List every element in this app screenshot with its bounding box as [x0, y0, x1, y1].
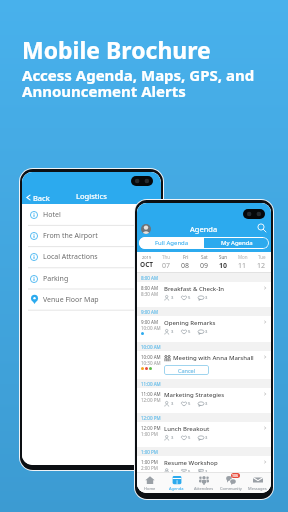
staticText: 9:00 AM — [141, 319, 159, 325]
staticText: 3 — [204, 435, 208, 441]
staticText: 8:00 AM — [141, 275, 159, 281]
button[interactable]: Venue Floor Map — [22, 289, 161, 310]
button[interactable]: Tue — [252, 252, 271, 272]
staticText: From the Airport — [43, 231, 98, 241]
staticText: 08 — [181, 261, 190, 271]
staticText: 12:00 PM — [141, 397, 161, 403]
staticText: Marketing Strategies — [164, 391, 225, 399]
button[interactable]: 9:00 AM — [137, 316, 271, 342]
staticText: 2019 — [142, 255, 152, 260]
staticText: 3 — [204, 295, 208, 301]
staticText: Home — [144, 486, 156, 491]
button[interactable]: Messages — [244, 473, 271, 493]
staticText: Agenda — [190, 224, 218, 234]
button[interactable]: Attendees — [190, 473, 217, 493]
staticText: Mobile Brochure — [22, 34, 211, 65]
staticText: Parking — [43, 274, 69, 284]
staticText: 5 — [187, 435, 191, 441]
button[interactable]: Back — [22, 191, 55, 204]
button[interactable]: Full Agenda — [139, 237, 204, 249]
staticText: 2:00 PM — [141, 465, 158, 471]
button[interactable]: Local Attractions — [22, 246, 161, 267]
staticText: Lunch Breakout — [164, 425, 210, 433]
button[interactable]: Fri — [176, 252, 195, 272]
staticText: 1:00 PM — [141, 459, 158, 465]
button[interactable]: From the Airport — [22, 225, 161, 246]
button[interactable]: 1:00 PM — [137, 456, 271, 472]
staticText: Breakfast & Check-In — [164, 285, 225, 293]
staticText: 10:00 AM — [141, 344, 161, 350]
staticText: 11 — [238, 261, 247, 271]
button[interactable]: Profile — [141, 224, 151, 234]
button[interactable]: Parking — [22, 268, 161, 289]
staticText: 1:00 PM — [141, 431, 158, 437]
staticText: 3 — [170, 295, 174, 301]
button[interactable]: 12:00 PM — [137, 422, 271, 447]
staticText: Full Agenda — [155, 239, 189, 247]
staticText: 10:00 AM — [141, 354, 161, 360]
staticText: Messages — [248, 486, 267, 491]
staticText: 3 — [170, 469, 174, 472]
staticText: 106 — [232, 473, 239, 478]
button[interactable]: Thu — [157, 252, 176, 272]
staticText: Thu — [162, 254, 171, 260]
staticText: Logistics — [76, 191, 107, 201]
staticText: 11:00 AM — [141, 391, 161, 397]
staticText: 10 — [219, 261, 228, 271]
button[interactable]: Sun — [214, 252, 233, 272]
staticText: 5 — [187, 469, 191, 472]
staticText: 09 — [200, 261, 209, 271]
staticText: Tue — [258, 254, 266, 260]
staticText: 8:30 AM — [141, 291, 159, 297]
staticText: 11:00 AM — [141, 381, 161, 387]
staticText: 3 — [204, 401, 208, 407]
staticText: Access Agenda, Maps, GPS, and Announceme… — [22, 65, 255, 101]
staticText: 07 — [162, 261, 171, 271]
button[interactable]: 10:00 AM — [137, 351, 271, 379]
button[interactable]: 11:00 AM — [137, 388, 271, 413]
staticText: My Agenda — [221, 239, 253, 247]
staticText: Cancel — [178, 367, 196, 374]
staticText: 12:00 PM — [141, 425, 161, 431]
staticText: 5 — [187, 295, 191, 301]
staticText: Meeting with Anna Marshall — [173, 354, 254, 362]
button[interactable]: Agenda — [163, 473, 190, 493]
staticText: Local Attractions — [43, 252, 98, 262]
staticText: 9:00 AM — [141, 309, 159, 315]
staticText: 10:30 AM — [141, 360, 161, 366]
button[interactable]: My Agenda — [204, 237, 269, 249]
button[interactable]: 8:00 AM — [137, 282, 271, 307]
button[interactable]: Hotel — [22, 204, 161, 225]
button[interactable]: Mon — [233, 252, 252, 272]
staticText: Opening Remarks — [164, 319, 216, 327]
staticText: 3 — [204, 329, 208, 335]
staticText: Resume Workshop — [164, 459, 218, 467]
staticText: Attendees — [194, 486, 214, 491]
staticText: Sat — [201, 254, 208, 260]
staticText: Agenda — [169, 486, 184, 491]
staticText: Fri — [183, 254, 189, 260]
staticText: 3 — [170, 435, 174, 441]
staticText: 12:00 PM — [141, 415, 161, 421]
staticText: Mon — [238, 254, 248, 260]
staticText: 5 — [187, 401, 191, 407]
staticText: Hotel — [43, 210, 61, 220]
staticText: 3 — [204, 469, 208, 472]
staticText: 1:00 PM — [141, 449, 158, 455]
staticText: Sun — [219, 254, 228, 260]
staticText: Community — [220, 486, 242, 491]
staticText: Back — [33, 193, 50, 203]
staticText: OCT — [140, 260, 154, 269]
button[interactable]: 106 — [217, 473, 244, 493]
button[interactable]: Cancel — [164, 365, 209, 375]
staticText: 12 — [257, 261, 266, 271]
button[interactable]: Sat — [195, 252, 214, 272]
staticText: 5 — [187, 329, 191, 335]
staticText: 8:00 AM — [141, 285, 159, 291]
staticText: 3 — [170, 401, 174, 407]
button[interactable]: Search — [257, 223, 267, 233]
staticText: 3 — [170, 329, 174, 335]
staticText: 10:00 AM — [141, 325, 161, 331]
staticText: Venue Floor Map — [43, 295, 99, 305]
button[interactable]: Home — [137, 473, 163, 493]
